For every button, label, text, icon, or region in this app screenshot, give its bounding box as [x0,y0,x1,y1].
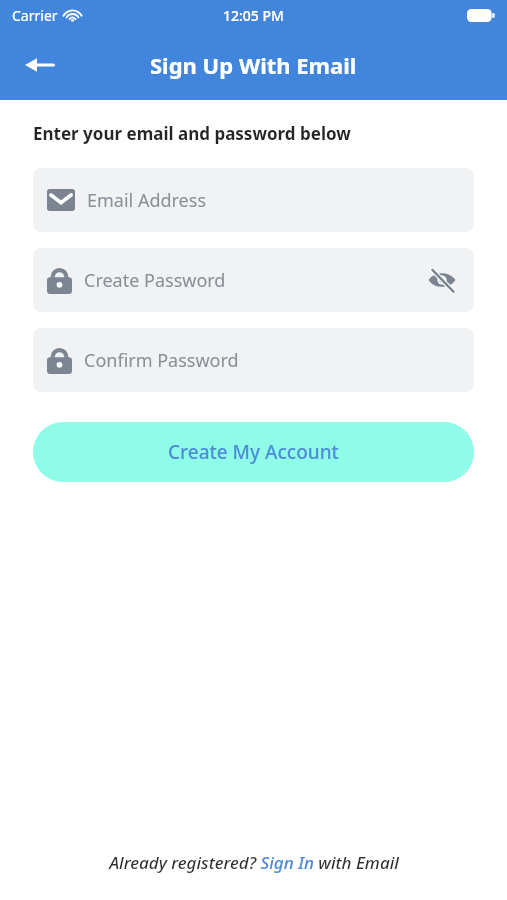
button[interactable]: Email Address [33,168,474,232]
button[interactable]: Create My Account [33,422,474,482]
staticText: Already registered? Sign In with Email [109,851,399,874]
button[interactable]: Already registered? Sign In with Email [0,851,507,900]
staticText: Enter your email and password below [33,122,351,145]
button[interactable]: Create Password [33,248,474,312]
staticText: 12:05 PM [223,6,284,25]
staticText: Confirm Password [84,348,239,373]
staticText: Create My Account [168,439,339,465]
staticText: Email Address [87,188,207,213]
staticText: Create Password [84,268,226,293]
button[interactable]: Confirm Password [33,328,474,392]
staticText: Sign Up With Email [150,50,357,80]
staticText: Carrier [12,6,58,25]
button[interactable]: Show password [424,262,460,298]
button[interactable]: Back [18,43,62,87]
